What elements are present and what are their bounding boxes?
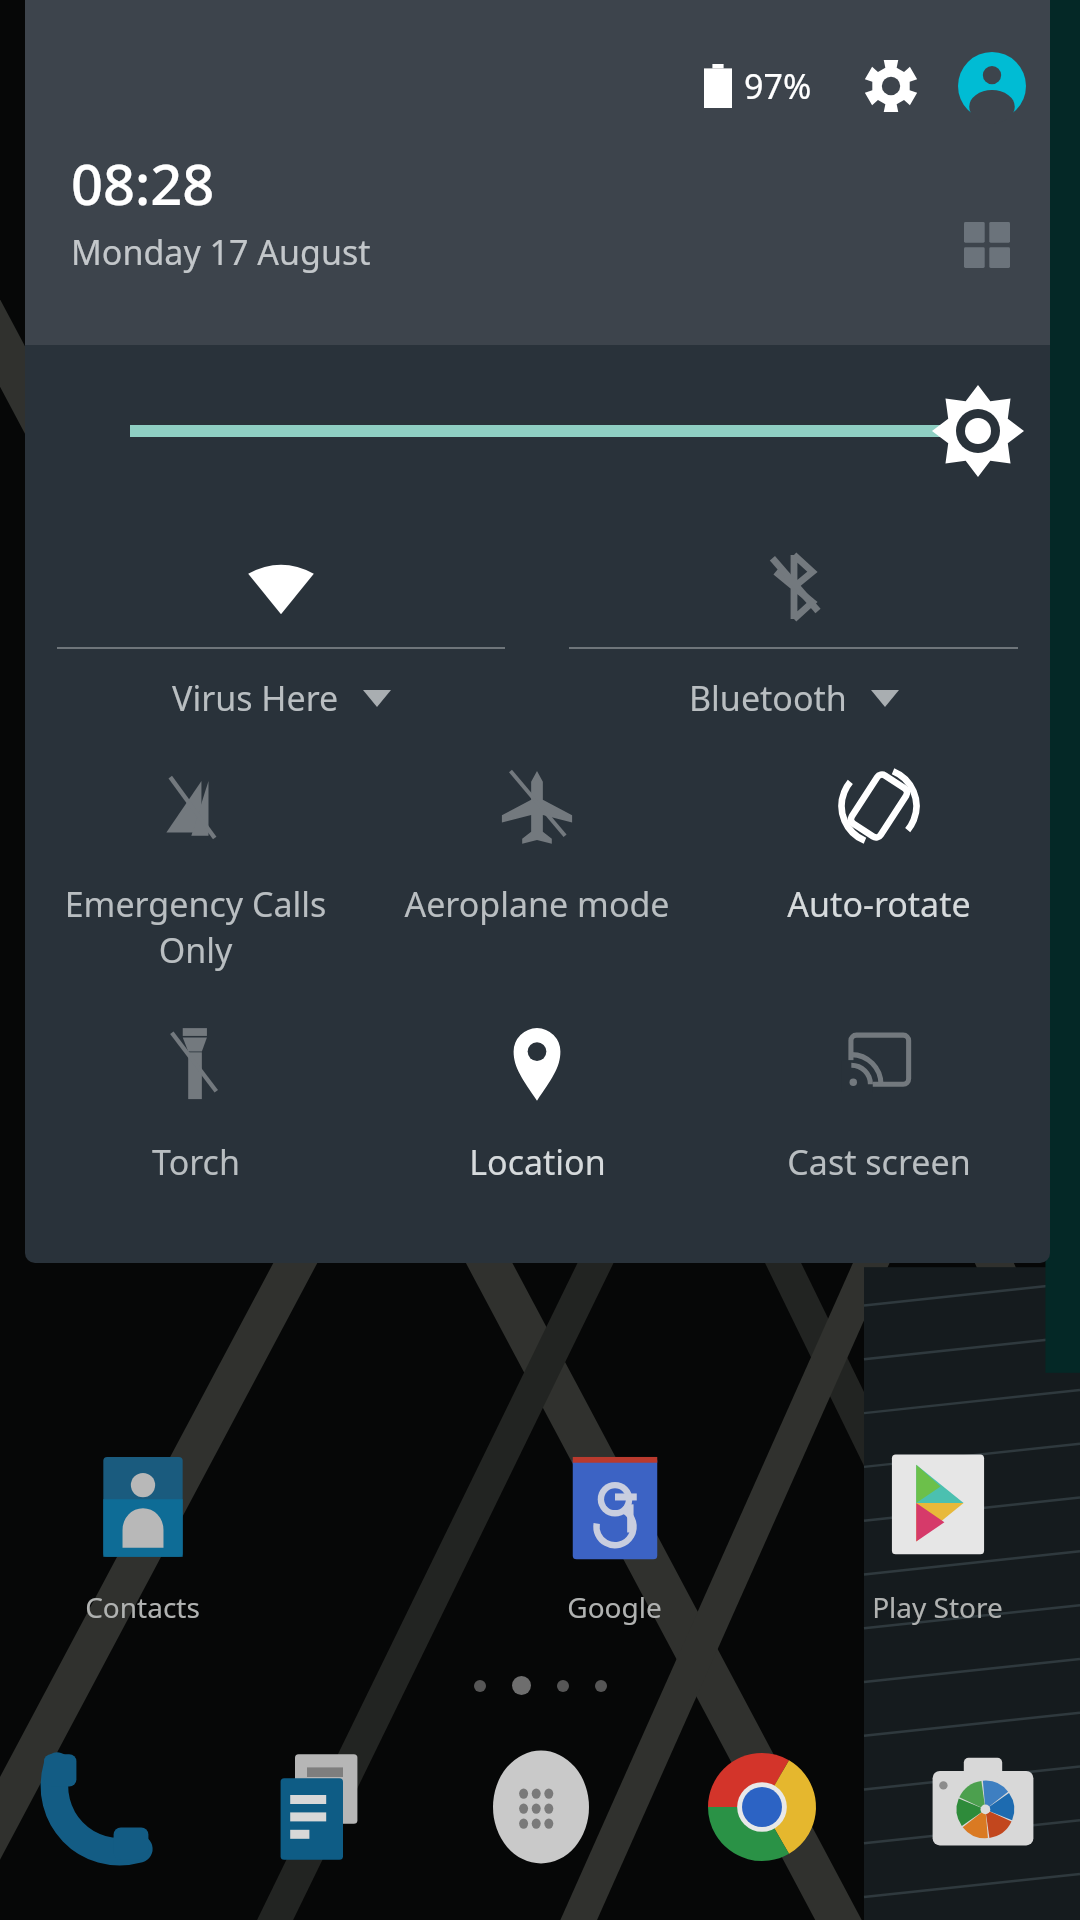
button[interactable]: Bluetooth <box>537 547 1050 721</box>
button[interactable]: User profile <box>956 50 1028 122</box>
button[interactable]: Apps <box>473 1739 608 1874</box>
staticText: Virus Here <box>172 675 339 721</box>
staticText: Bluetooth <box>689 675 847 721</box>
button[interactable]: Location <box>366 1025 708 1185</box>
button[interactable]: Aeroplane mode <box>366 767 708 927</box>
button[interactable]: Messages <box>251 1739 386 1874</box>
staticText: 08:28 <box>71 145 215 221</box>
button[interactable]: Wi-Fi <box>25 547 537 721</box>
button[interactable]: Auto-rotate <box>708 767 1050 927</box>
button[interactable]: Settings <box>858 53 924 119</box>
button[interactable]: Cast screen <box>708 1025 1050 1185</box>
button[interactable]: Google <box>527 1448 702 1626</box>
button[interactable]: Chrome <box>694 1739 829 1874</box>
button[interactable]: Play Store <box>850 1448 1025 1626</box>
button[interactable]: Torch <box>25 1025 366 1185</box>
staticText: Google <box>567 1588 662 1626</box>
button[interactable]: Phone <box>30 1739 165 1874</box>
staticText: Location <box>469 1139 606 1185</box>
staticText: Play Store <box>872 1588 1003 1626</box>
staticText: 97% <box>744 63 812 109</box>
staticText: Torch <box>152 1139 240 1185</box>
button[interactable]: Contacts <box>55 1448 230 1626</box>
button[interactable]: Emergency Calls Only <box>25 767 366 973</box>
staticText: Contacts <box>85 1588 200 1626</box>
staticText: Auto-rotate <box>787 881 971 927</box>
staticText: Emergency Calls Only <box>29 881 362 973</box>
staticText: Cast screen <box>787 1139 971 1185</box>
staticText: Aeroplane mode <box>404 881 670 927</box>
button[interactable]: Edit tiles <box>954 212 1020 278</box>
button[interactable]: Brightness <box>25 345 1050 517</box>
button[interactable]: Camera <box>915 1739 1050 1874</box>
staticText: Monday 17 August <box>71 229 371 275</box>
